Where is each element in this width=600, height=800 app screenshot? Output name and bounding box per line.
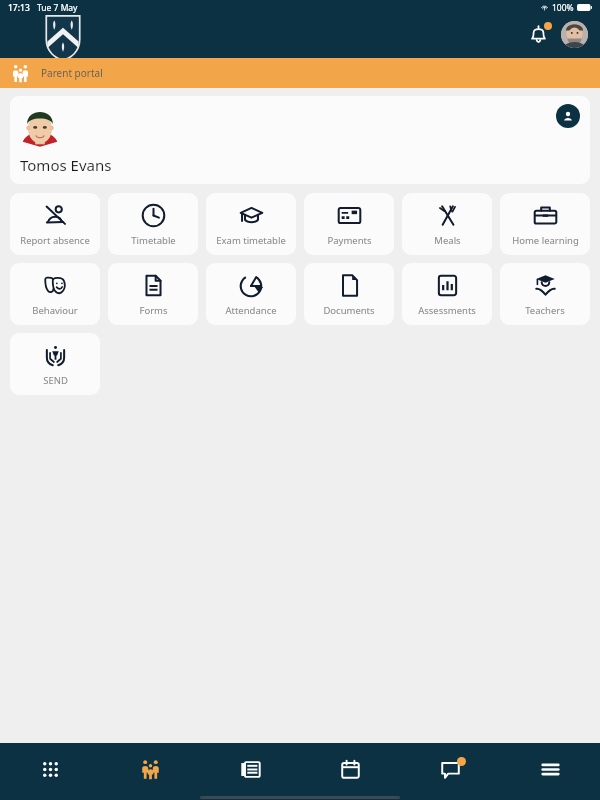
button[interactable]: Meals [402, 193, 492, 255]
button[interactable]: Documents [304, 263, 394, 325]
staticText: Exam timetable [216, 234, 286, 247]
staticText: Report absence [20, 234, 90, 247]
staticText: 17:13 [8, 2, 30, 14]
button[interactable]: Exam timetable [206, 193, 296, 255]
button[interactable]: Notifications [521, 17, 555, 51]
button[interactable]: Parent portal [0, 58, 600, 88]
staticText: Payments [327, 234, 372, 247]
staticText: Behaviour [32, 304, 78, 317]
staticText: 100% [552, 2, 574, 14]
button[interactable]: Attendance [206, 263, 296, 325]
button[interactable]: SEND [10, 333, 100, 395]
button[interactable]: Newsfeed [200, 743, 300, 795]
button[interactable]: Timetable [108, 193, 198, 255]
staticText: Tomos Evans [20, 155, 112, 175]
staticText: Forms [139, 304, 168, 317]
button[interactable]: Calendar [300, 743, 400, 795]
button[interactable]: Tomos Evans [10, 96, 590, 184]
staticText: Meals [434, 234, 461, 247]
staticText: Documents [323, 304, 375, 317]
button[interactable]: More [500, 743, 600, 795]
button[interactable]: Parent portal [100, 743, 200, 795]
staticText: SEND [43, 374, 68, 387]
staticText: Tue 7 May [37, 2, 78, 14]
staticText: Home learning [512, 234, 579, 247]
button[interactable]: Payments [304, 193, 394, 255]
button[interactable]: Profile [561, 21, 588, 48]
button[interactable]: Messages [400, 743, 500, 795]
button[interactable]: Behaviour [10, 263, 100, 325]
button[interactable]: Report absence [10, 193, 100, 255]
staticText: Assessments [418, 304, 476, 317]
button[interactable]: Teachers [500, 263, 590, 325]
button[interactable]: Dashboard [0, 743, 100, 795]
staticText: Attendance [225, 304, 277, 317]
button[interactable]: Assessments [402, 263, 492, 325]
staticText: Timetable [131, 234, 176, 247]
staticText: Teachers [525, 304, 565, 317]
staticText: Parent portal [41, 66, 103, 80]
button[interactable]: Home learning [500, 193, 590, 255]
button[interactable]: Forms [108, 263, 198, 325]
button[interactable]: Switch student [556, 104, 580, 128]
